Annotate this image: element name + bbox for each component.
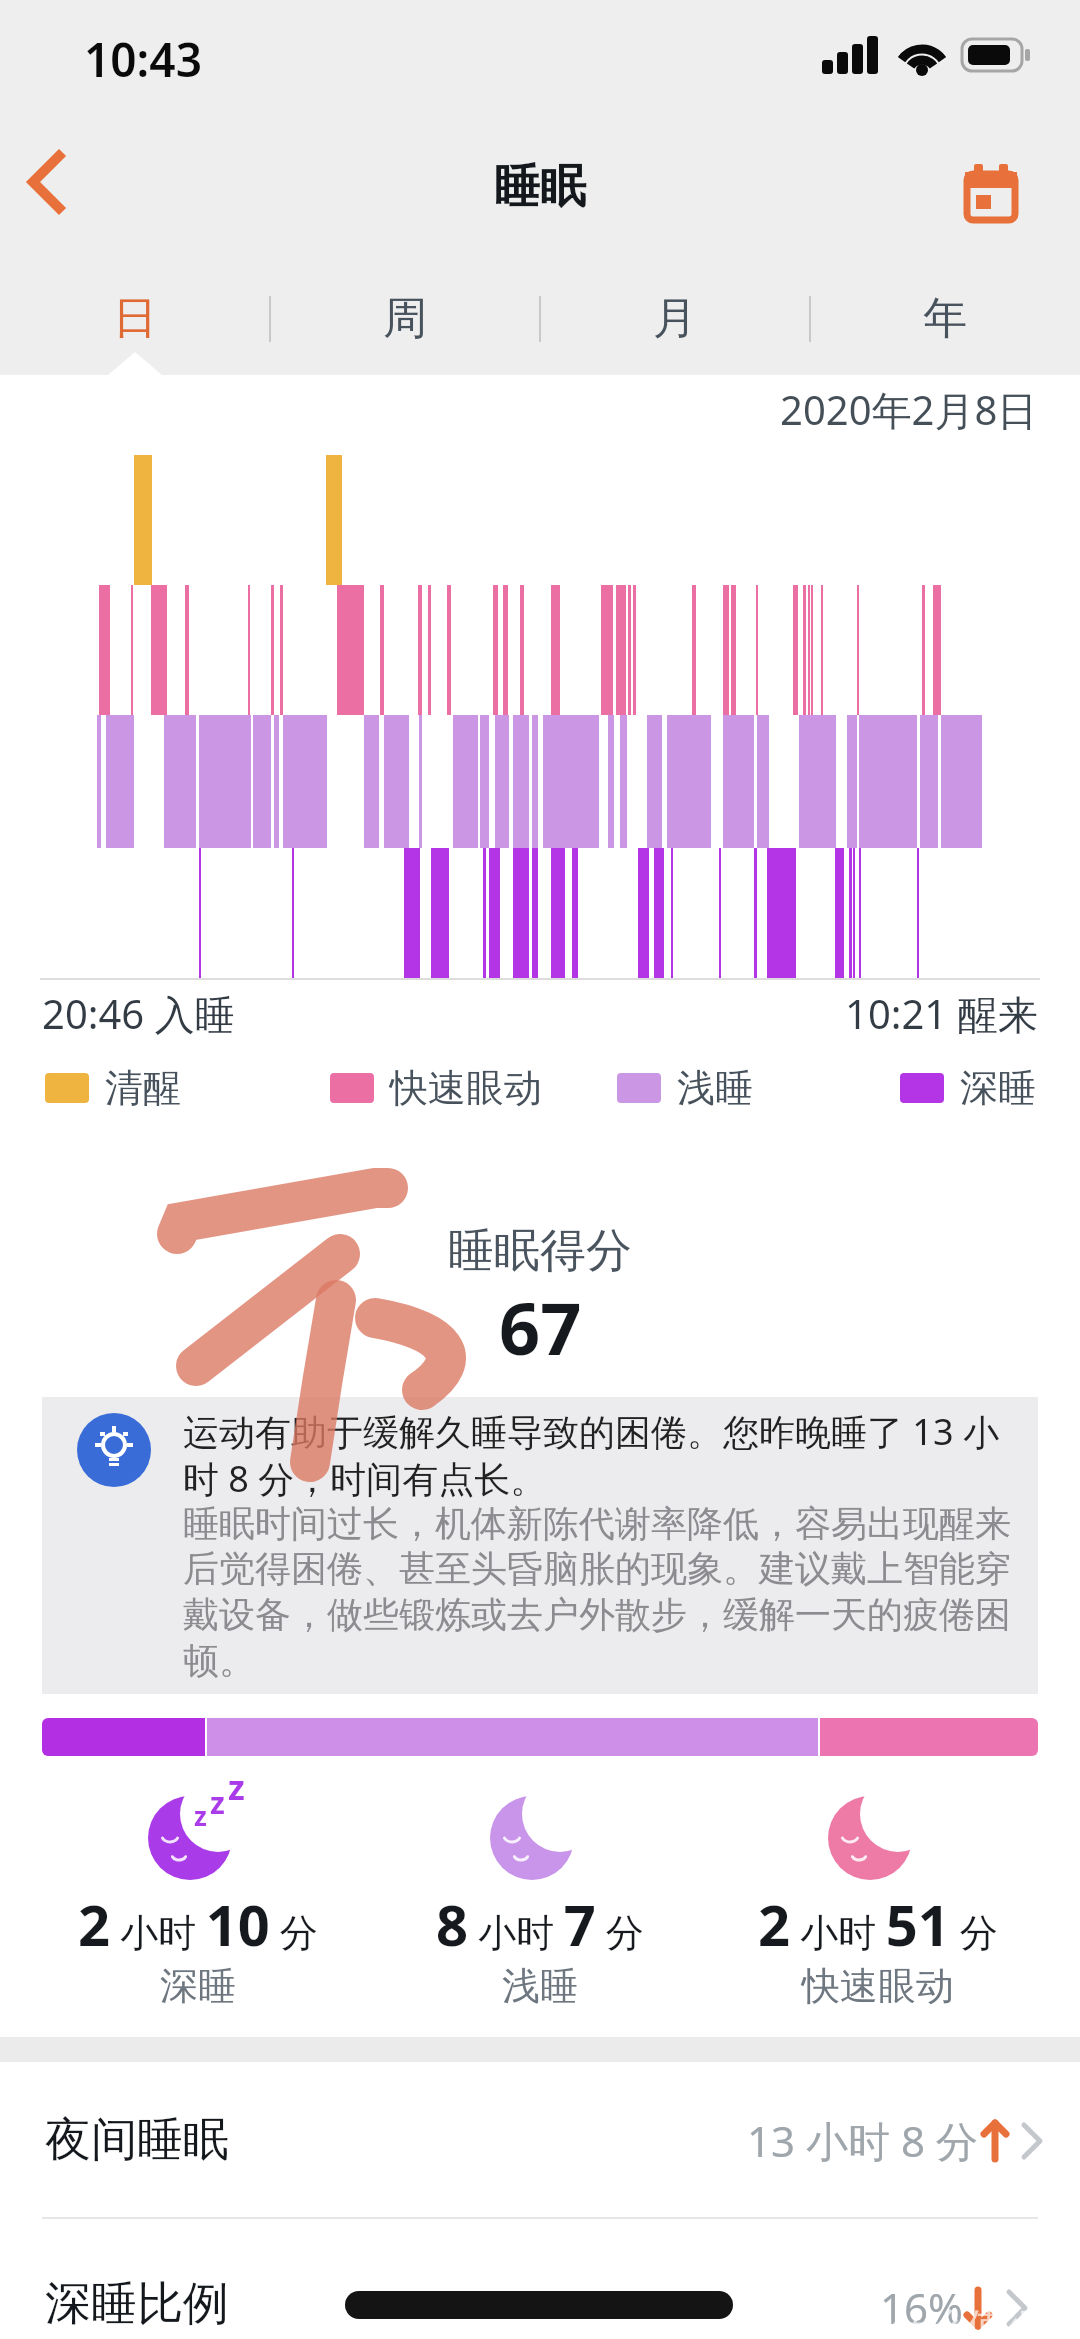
staticText: 深睡: [160, 1962, 236, 2010]
staticText: 快速眼动: [802, 1962, 954, 2010]
button[interactable]: 深睡比例: [0, 2219, 1080, 2339]
staticText: 深睡: [960, 1064, 1036, 1112]
staticText: 2 小时 10 分: [78, 1886, 318, 1962]
button[interactable]: 周: [270, 278, 540, 358]
staticText: z: [210, 1782, 225, 1823]
staticText: z: [228, 1764, 245, 1810]
staticText: 清醒: [105, 1064, 181, 1112]
button[interactable]: 年: [810, 278, 1080, 358]
staticText: 浅睡: [677, 1064, 753, 1112]
staticText: 年: [923, 291, 967, 346]
staticText: 睡眠得分: [448, 1222, 632, 1280]
staticText: 日: [113, 291, 157, 346]
staticText: 20:46 入睡: [42, 986, 235, 1041]
staticText: 夜间睡眠: [45, 2111, 229, 2169]
button[interactable]: 月: [540, 278, 810, 358]
staticText: 10:21 醒来: [845, 986, 1038, 1041]
staticText: 13 小时 8 分: [747, 2112, 978, 2169]
button[interactable]: [10, 140, 90, 230]
button[interactable]: 日: [0, 278, 270, 358]
staticText: 16%: [880, 2279, 963, 2336]
button[interactable]: [950, 152, 1034, 236]
staticText: 睡眠时间过长，机体新陈代谢率降低，容易出现醒来 后觉得困倦、甚至头昏脑胀的现象。…: [183, 1501, 1011, 1684]
staticText: 什么值得买: [890, 2303, 1080, 2339]
staticText: 快速眼动: [390, 1064, 542, 1112]
staticText: 2020年2月8日: [780, 382, 1038, 437]
button[interactable]: 夜间睡眠: [0, 2062, 1080, 2218]
staticText: 8 小时 7 分: [436, 1886, 644, 1962]
staticText: 睡眠: [494, 158, 586, 216]
staticText: 浅睡: [502, 1962, 578, 2010]
staticText: 周: [383, 291, 427, 346]
staticText: 深睡比例: [45, 2275, 229, 2333]
staticText: 10:43: [84, 28, 202, 91]
staticText: 月: [653, 291, 697, 346]
staticText: 2 小时 51 分: [758, 1886, 998, 1962]
staticText: z: [194, 1798, 207, 1833]
staticText: 67: [499, 1278, 582, 1376]
staticText: 运动有助于缓解久睡导致的困倦。您昨晚睡了 13 小 时 8 分，时间有点长。: [183, 1407, 999, 1503]
